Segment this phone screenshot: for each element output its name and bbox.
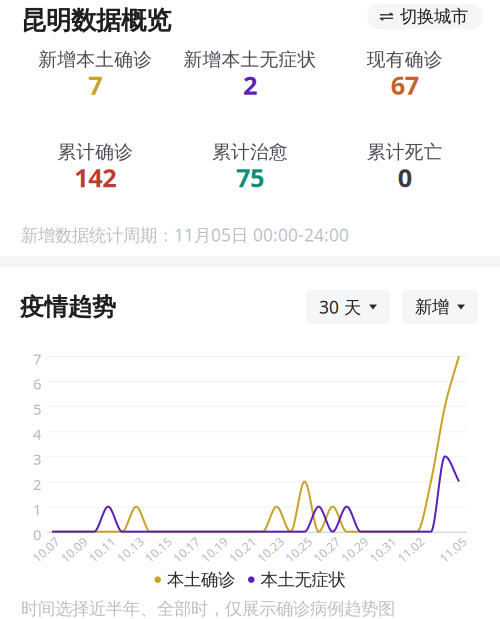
staticText: 6 xyxy=(33,374,41,394)
staticText: 11.02 xyxy=(395,542,426,558)
staticText: 10.23 xyxy=(255,542,286,558)
staticText: 10.21 xyxy=(227,542,258,558)
staticText: 累计治愈 xyxy=(212,141,288,164)
staticText: 10.09 xyxy=(59,542,90,558)
staticText: 本土确诊 xyxy=(167,569,235,590)
staticText: 累计确诊 xyxy=(57,141,133,164)
staticText: 新增本土无症状 xyxy=(183,48,316,71)
button[interactable]: 新增 xyxy=(402,290,478,324)
staticText: 5 xyxy=(33,399,41,419)
staticText: 10.29 xyxy=(339,542,370,558)
staticText: 75 xyxy=(236,161,264,194)
staticText: 1 xyxy=(33,500,41,519)
staticText: 切换城市 xyxy=(400,6,468,27)
staticText: 11.05 xyxy=(437,542,468,558)
staticText: 10.15 xyxy=(143,542,174,558)
staticText: 2 xyxy=(243,68,257,102)
staticText: 新增本土确诊 xyxy=(38,48,152,71)
staticText: 10.27 xyxy=(311,542,342,558)
staticText: 新增数据统计周期：11月05日 00:00-24:00 xyxy=(21,223,349,246)
staticText: 昆明数据概览 xyxy=(21,5,171,36)
staticText: 本土无症状 xyxy=(260,569,345,590)
staticText: 0 xyxy=(33,525,41,544)
staticText: 67 xyxy=(391,68,419,102)
staticText: 0 xyxy=(398,161,412,194)
staticText: 时间选择近半年、全部时，仅展示确诊病例趋势图 xyxy=(21,598,395,619)
staticText: 30 天 xyxy=(319,295,361,318)
button[interactable]: 30 天 xyxy=(306,290,390,324)
staticText: 10.31 xyxy=(367,542,398,558)
staticText: 7 xyxy=(33,349,41,368)
staticText: 3 xyxy=(33,449,41,469)
staticText: 10.19 xyxy=(199,542,230,558)
button[interactable]: 切换城市 xyxy=(367,4,483,29)
staticText: 7 xyxy=(88,68,102,102)
staticText: 10.07 xyxy=(30,542,61,558)
staticText: 10.13 xyxy=(115,542,146,558)
staticText: 疫情趋势 xyxy=(20,292,116,322)
staticText: 10.11 xyxy=(87,542,118,558)
staticText: 4 xyxy=(33,424,41,444)
staticText: 新增 xyxy=(415,296,449,318)
staticText: 10.17 xyxy=(171,542,202,558)
staticText: 现有确诊 xyxy=(367,48,443,71)
staticText: 2 xyxy=(33,474,41,494)
staticText: 142 xyxy=(74,161,116,194)
staticText: 累计死亡 xyxy=(367,141,443,164)
staticText: 10.25 xyxy=(283,542,314,558)
